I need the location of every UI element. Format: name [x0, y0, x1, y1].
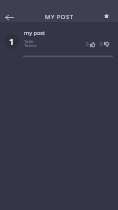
- staticText: 0: [100, 41, 103, 47]
- staticText: Talent: [24, 42, 37, 48]
- button[interactable]: Like: [90, 42, 95, 47]
- button[interactable]: Home: [100, 10, 112, 22]
- staticText: 1: [9, 35, 15, 47]
- staticText: MY POST: [45, 13, 74, 21]
- staticText: 0: [86, 41, 89, 47]
- staticText: my post: [24, 29, 46, 37]
- button[interactable]: Back: [3, 11, 15, 23]
- button[interactable]: Dislike: [104, 42, 109, 47]
- staticText: Tablt: [24, 38, 34, 44]
